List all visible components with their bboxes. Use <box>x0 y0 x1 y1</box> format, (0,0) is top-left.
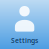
staticText: Settings <box>11 36 38 45</box>
button[interactable]: Settings <box>11 36 38 45</box>
button[interactable]: Account <box>0 0 49 49</box>
